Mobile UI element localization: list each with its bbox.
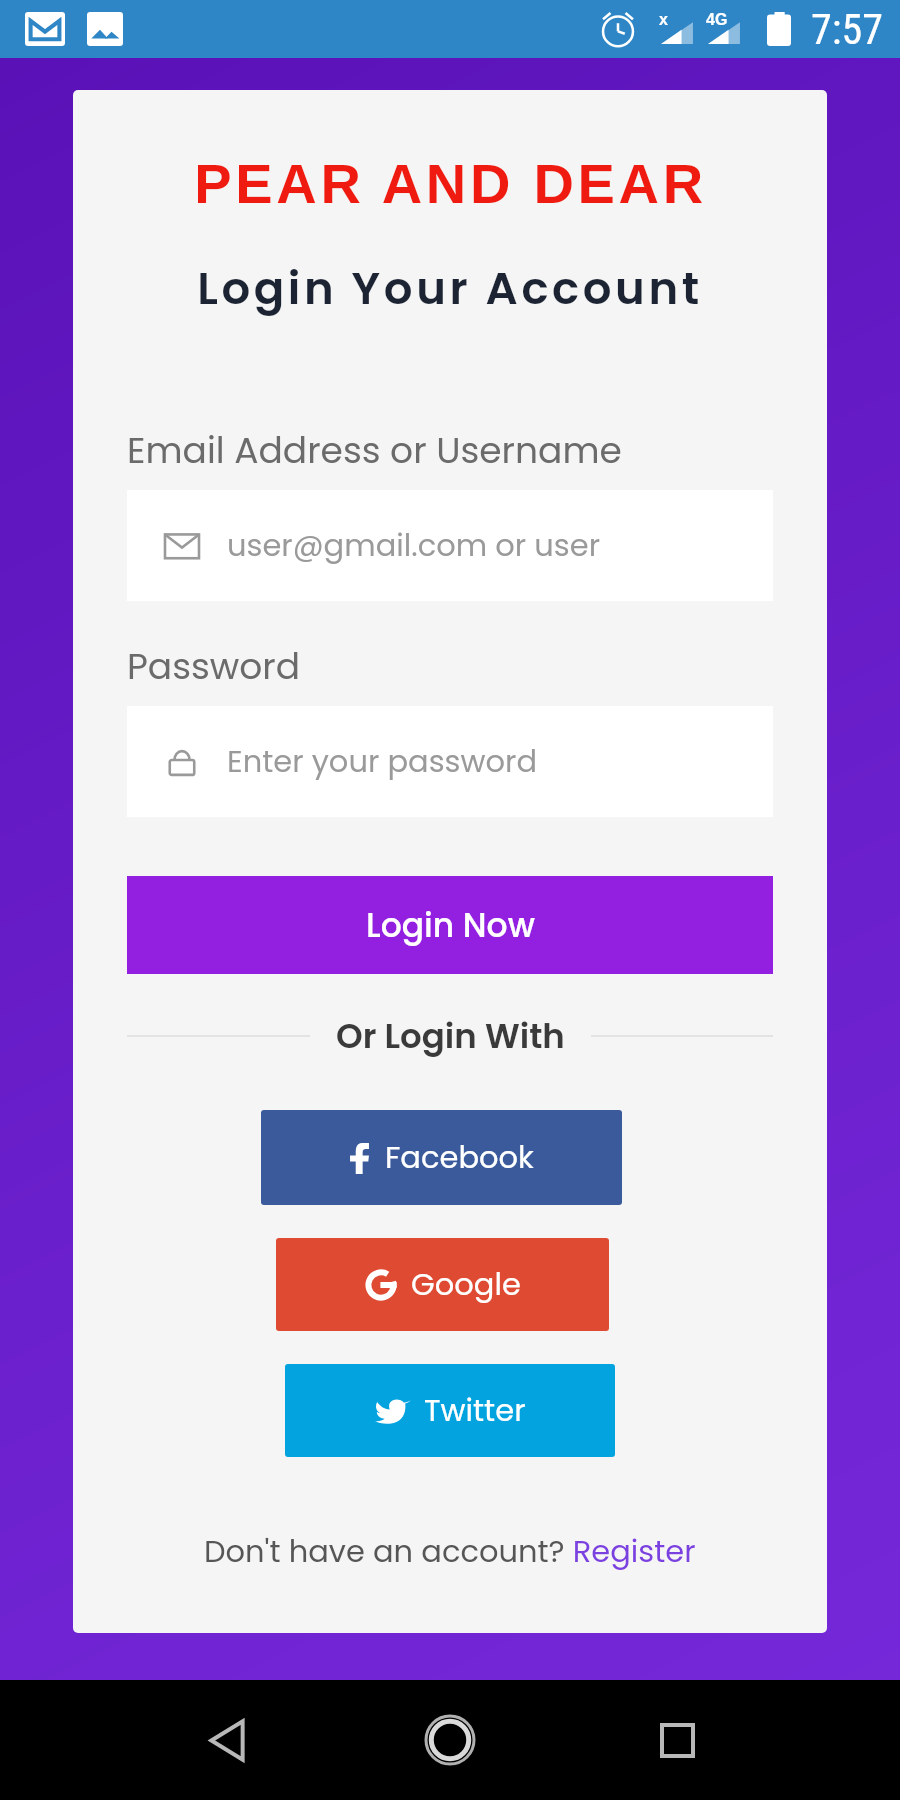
staticText: PEAR AND DEAR bbox=[194, 152, 707, 215]
button[interactable]: Login Now bbox=[127, 876, 773, 974]
staticText: Login Your Account bbox=[197, 257, 703, 320]
button[interactable]: Don't have an account? Register bbox=[196, 1524, 704, 1579]
staticText: Facebook bbox=[385, 1136, 534, 1179]
button[interactable]: Back bbox=[182, 1695, 272, 1785]
staticText: Login Now bbox=[366, 902, 535, 948]
staticText: Enter your password bbox=[227, 740, 538, 783]
staticText: Google bbox=[411, 1263, 521, 1306]
button[interactable]: Facebook bbox=[261, 1110, 622, 1205]
button[interactable]: Home bbox=[405, 1695, 495, 1785]
button[interactable]: Enter your password bbox=[127, 706, 773, 817]
staticText: 4G bbox=[706, 11, 728, 29]
staticText: Email Address or Username bbox=[127, 425, 622, 475]
button[interactable]: Recents bbox=[632, 1695, 722, 1785]
button[interactable]: user@gmail.com or user bbox=[127, 490, 773, 601]
staticText: Twitter bbox=[424, 1389, 526, 1432]
staticText: 7:57 bbox=[811, 5, 884, 54]
staticText: Don't have an account? Register bbox=[204, 1530, 696, 1573]
staticText: Or Login With bbox=[336, 1012, 565, 1060]
staticText: x bbox=[659, 11, 668, 29]
button[interactable]: Twitter bbox=[285, 1364, 615, 1457]
staticText: Password bbox=[127, 641, 301, 691]
button[interactable]: Google bbox=[276, 1238, 609, 1331]
staticText: user@gmail.com or user bbox=[227, 524, 601, 567]
